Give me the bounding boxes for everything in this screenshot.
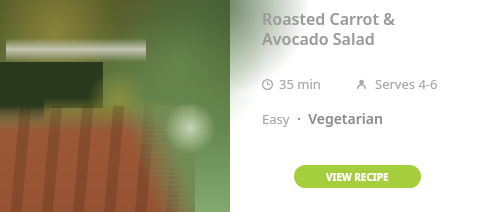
staticText: 35 min [279, 75, 321, 93]
staticText: · Vegetarian [297, 109, 383, 128]
staticText: Roasted Carrot & Avocado Salad [262, 8, 395, 49]
staticText: Serves 4-6 [375, 75, 438, 93]
staticText: VIEW RECIPE [326, 170, 389, 184]
staticText: Easy [262, 110, 297, 128]
other: Servings [356, 79, 367, 90]
other: Cook time [262, 79, 273, 90]
button[interactable]: VIEW RECIPE [294, 165, 421, 188]
